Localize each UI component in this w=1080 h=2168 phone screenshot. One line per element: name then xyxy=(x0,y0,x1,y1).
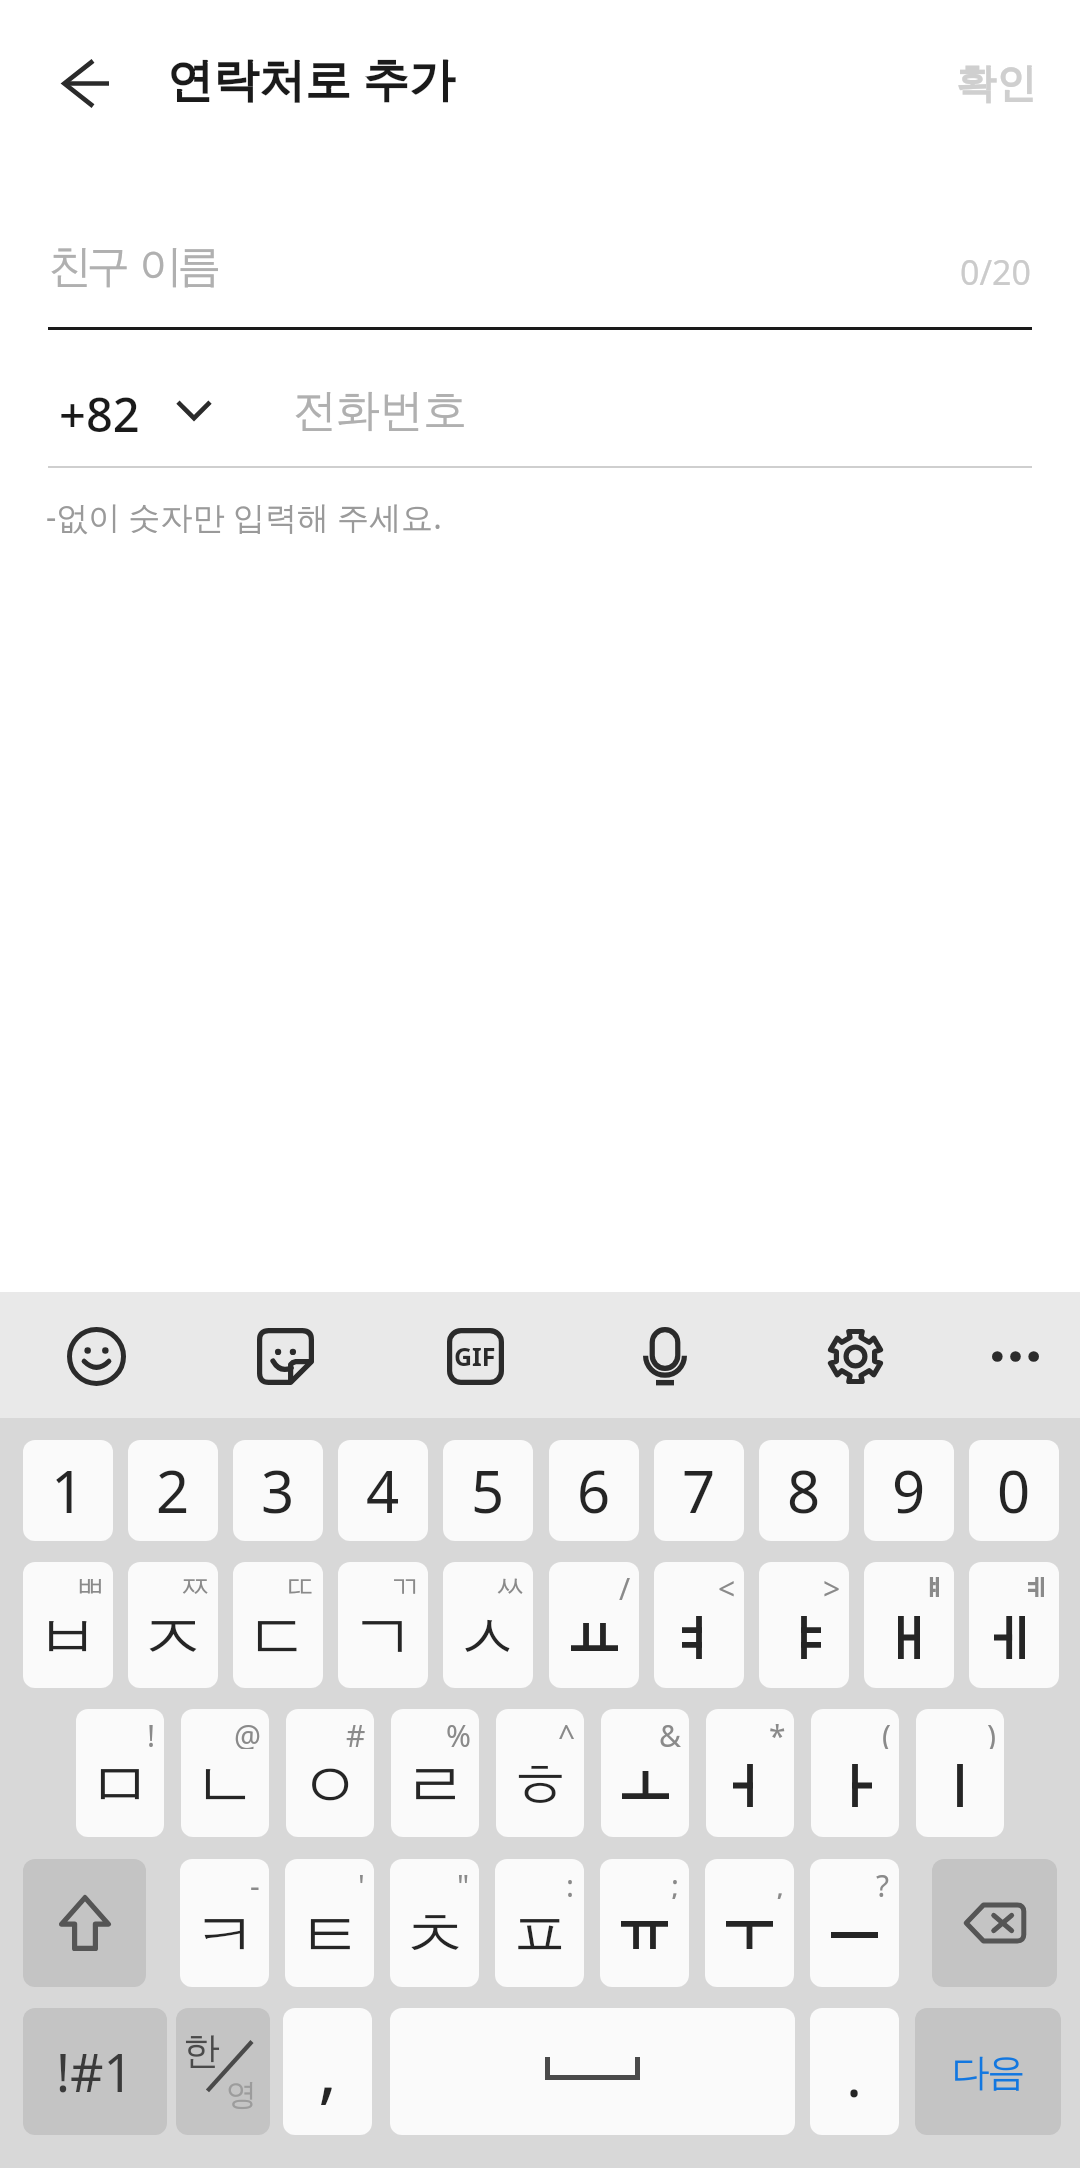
button[interactable]: / xyxy=(549,1562,639,1688)
staticText: ㅉ xyxy=(180,1568,210,1602)
staticText: , xyxy=(318,2019,338,2117)
button[interactable]: Settings xyxy=(799,1300,911,1412)
button[interactable]: Backspace xyxy=(932,1859,1057,1987)
button[interactable]: , xyxy=(705,1859,794,1987)
staticText: < xyxy=(718,1568,736,1602)
button[interactable]: 0 xyxy=(969,1440,1059,1541)
staticText: ^ xyxy=(558,1715,576,1749)
button[interactable] xyxy=(969,1562,1059,1688)
button[interactable]: Voice input xyxy=(609,1300,721,1412)
staticText: 연락처로 추가 xyxy=(167,47,455,110)
button[interactable]: 7 xyxy=(654,1440,744,1541)
button[interactable]: # xyxy=(286,1709,374,1837)
button[interactable]: < xyxy=(654,1562,744,1688)
button[interactable]: @ xyxy=(181,1709,269,1837)
button[interactable]: 4 xyxy=(338,1440,428,1541)
staticText: ㄴ xyxy=(193,1745,257,1826)
button[interactable]: ( xyxy=(811,1709,899,1837)
staticText: ㅆ xyxy=(495,1568,525,1602)
staticText: ㅌ xyxy=(298,1895,362,1976)
staticText: ㅁ xyxy=(88,1745,152,1826)
button[interactable]: ㄲ xyxy=(338,1562,428,1688)
button[interactable]: Stickers xyxy=(229,1300,341,1412)
staticText: * xyxy=(769,1715,786,1749)
staticText: 9 xyxy=(892,1451,926,1530)
button[interactable]: 3 xyxy=(233,1440,323,1541)
staticText: , xyxy=(776,1865,785,1899)
staticText: 3 xyxy=(261,1451,295,1530)
staticText: # xyxy=(346,1715,366,1749)
button[interactable]: 2 xyxy=(128,1440,218,1541)
button[interactable]: Switch language xyxy=(176,2008,270,2135)
staticText: 다음 xyxy=(953,2048,1024,2096)
button[interactable]: , xyxy=(283,2008,372,2135)
staticText: ㅎ xyxy=(508,1745,572,1826)
button[interactable]: ; xyxy=(600,1859,689,1987)
staticText: ㄹ xyxy=(403,1745,467,1826)
staticText: % xyxy=(446,1715,471,1749)
button[interactable]: ) xyxy=(916,1709,1004,1837)
staticText: ㅅ xyxy=(456,1597,520,1678)
staticText: 영 xyxy=(226,2075,257,2114)
staticText: " xyxy=(457,1865,470,1899)
staticText: 8 xyxy=(787,1451,821,1530)
button[interactable]: !#1 xyxy=(23,2008,167,2135)
staticText: ㅇ xyxy=(298,1745,362,1826)
button[interactable]: * xyxy=(706,1709,794,1837)
button[interactable]: 확인 xyxy=(936,19,1056,147)
staticText: / xyxy=(619,1568,631,1602)
staticText: +82 xyxy=(59,382,140,446)
button[interactable]: ㅆ xyxy=(443,1562,533,1688)
staticText: & xyxy=(659,1715,681,1749)
staticText: 확인 xyxy=(956,58,1036,108)
staticText: : xyxy=(566,1865,575,1899)
button[interactable]: Space xyxy=(390,2008,795,2135)
button[interactable]: . xyxy=(810,2008,899,2135)
button[interactable]: ^ xyxy=(496,1709,584,1837)
button[interactable]: Shift xyxy=(23,1859,146,1987)
button[interactable]: Back xyxy=(37,35,133,131)
button[interactable]: More options xyxy=(959,1300,1071,1412)
button[interactable]: & xyxy=(601,1709,689,1837)
button[interactable]: % xyxy=(391,1709,479,1837)
staticText: ? xyxy=(876,1865,890,1899)
button[interactable]: Select country code xyxy=(154,371,234,451)
button[interactable]: Emoji xyxy=(40,1300,152,1412)
button[interactable]: " xyxy=(390,1859,479,1987)
staticText: 2 xyxy=(156,1451,190,1530)
staticText: 0 xyxy=(997,1451,1031,1530)
button[interactable]: 9 xyxy=(864,1440,954,1541)
button[interactable]: 6 xyxy=(549,1440,639,1541)
button[interactable]: ㅉ xyxy=(128,1562,218,1688)
staticText: 7 xyxy=(682,1451,716,1530)
staticText: GIF xyxy=(454,1339,496,1373)
staticText: 4 xyxy=(366,1451,400,1530)
staticText: ㅂ xyxy=(36,1597,100,1678)
staticText: ㄷ xyxy=(246,1597,310,1678)
button[interactable]: ? xyxy=(810,1859,899,1987)
button[interactable]: - xyxy=(180,1859,269,1987)
staticText: 6 xyxy=(577,1451,611,1530)
staticText: > xyxy=(823,1568,841,1602)
button[interactable]: 8 xyxy=(759,1440,849,1541)
button[interactable]: ' xyxy=(285,1859,374,1987)
button[interactable]: 다음 xyxy=(915,2008,1061,2135)
button[interactable]: ㅃ xyxy=(23,1562,113,1688)
button[interactable]: > xyxy=(759,1562,849,1688)
staticText: ' xyxy=(358,1865,365,1899)
staticText: ㅊ xyxy=(403,1895,467,1976)
staticText: . xyxy=(846,2033,863,2115)
staticText: !#1 xyxy=(56,2036,134,2107)
button[interactable]: 1 xyxy=(23,1440,113,1541)
button[interactable]: : xyxy=(495,1859,584,1987)
staticText: ) xyxy=(987,1715,996,1749)
button[interactable]: ㄸ xyxy=(233,1562,323,1688)
staticText: ㅍ xyxy=(508,1895,572,1976)
button[interactable]: GIF xyxy=(419,1300,531,1412)
button[interactable] xyxy=(864,1562,954,1688)
staticText: ㅋ xyxy=(193,1895,257,1976)
button[interactable]: 5 xyxy=(443,1440,533,1541)
staticText: ㄸ xyxy=(285,1568,315,1602)
staticText: ! xyxy=(147,1715,156,1749)
button[interactable]: ! xyxy=(76,1709,164,1837)
